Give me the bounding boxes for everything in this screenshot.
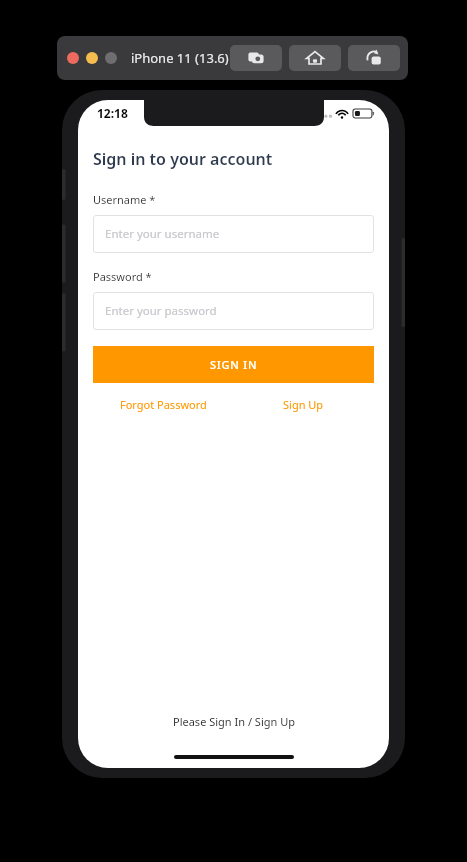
button[interactable]: Enter your password bbox=[93, 292, 374, 330]
staticText: Password * bbox=[93, 269, 152, 284]
button[interactable]: Close bbox=[67, 52, 79, 64]
button[interactable]: Sign Up bbox=[233, 397, 374, 412]
staticText: Username * bbox=[93, 192, 156, 207]
staticText: Please Sign In / Sign Up bbox=[173, 714, 295, 729]
button[interactable]: Screenshot bbox=[230, 45, 282, 71]
button[interactable]: Forgot Password bbox=[93, 397, 233, 412]
staticText: Sign in to your account bbox=[93, 148, 273, 170]
staticText: Forgot Password bbox=[120, 397, 207, 412]
button[interactable]: Zoom bbox=[105, 52, 117, 64]
staticText: iPhone 11 (13.6) bbox=[131, 49, 229, 67]
button[interactable]: SIGN IN bbox=[93, 346, 374, 383]
staticText: Enter your username bbox=[105, 226, 220, 242]
button[interactable]: Rotate bbox=[348, 45, 400, 71]
staticText: SIGN IN bbox=[210, 357, 258, 372]
staticText: Sign Up bbox=[283, 397, 324, 412]
button[interactable]: Enter your username bbox=[93, 215, 374, 253]
staticText: 12:18 bbox=[97, 105, 128, 121]
button[interactable]: Minimize bbox=[86, 52, 98, 64]
staticText: Enter your password bbox=[105, 303, 217, 319]
button[interactable]: Home bbox=[289, 45, 341, 71]
